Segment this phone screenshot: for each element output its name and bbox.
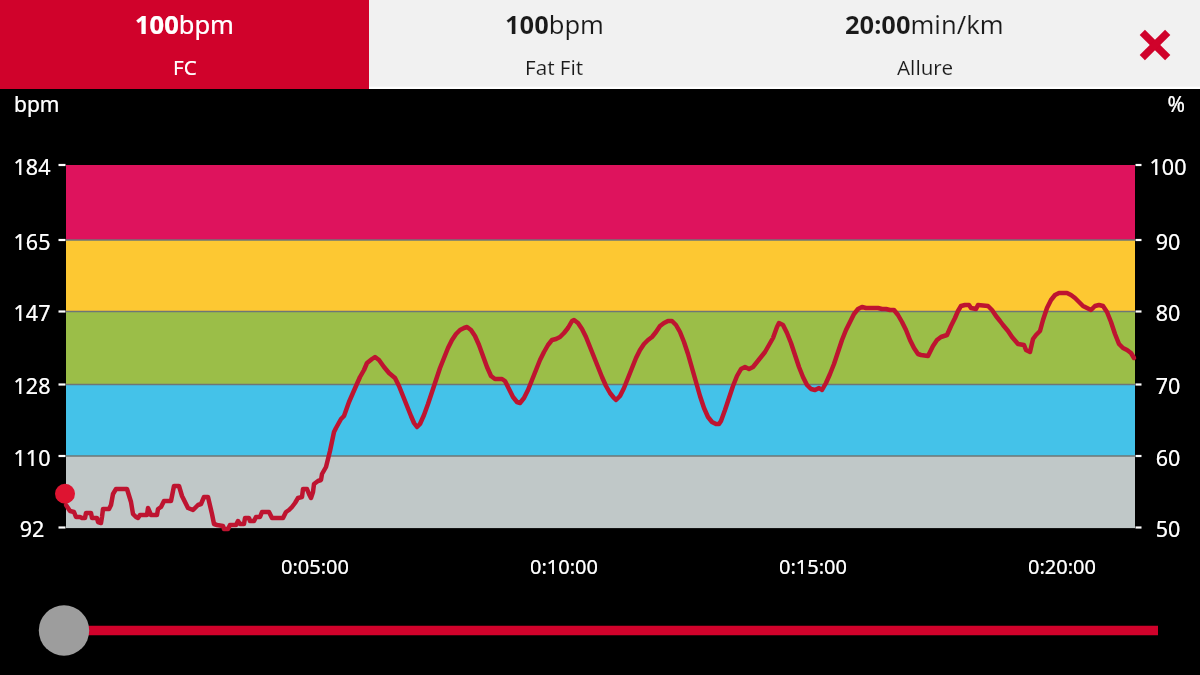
staticText: Fat Fit bbox=[525, 53, 584, 81]
staticText: 165 bbox=[2, 227, 62, 256]
staticText: 184 bbox=[2, 152, 62, 181]
staticText: % bbox=[1120, 90, 1185, 119]
staticText: 92 bbox=[2, 514, 62, 543]
staticText: 0:05:00 bbox=[255, 553, 375, 580]
button[interactable]: 100bpm bbox=[369, 0, 739, 89]
staticText: 50 bbox=[1138, 514, 1198, 543]
staticText: FC bbox=[173, 53, 197, 81]
staticText: 147 bbox=[2, 298, 62, 327]
staticText: 80 bbox=[1138, 298, 1198, 327]
staticText: 0:10:00 bbox=[504, 553, 624, 580]
staticText: 0:15:00 bbox=[753, 553, 873, 580]
staticText: 128 bbox=[2, 371, 62, 400]
staticText: 60 bbox=[1138, 443, 1198, 472]
button[interactable]: 20:00min/km bbox=[739, 0, 1109, 89]
staticText: 100 bbox=[1138, 152, 1198, 181]
staticText: 70 bbox=[1138, 371, 1198, 400]
button[interactable]: Close bbox=[1109, 0, 1200, 89]
button[interactable]: Session timeline slider bbox=[39, 605, 1159, 656]
staticText: Allure bbox=[897, 53, 953, 81]
staticText: 0:20:00 bbox=[1002, 553, 1122, 580]
staticText: 20:00min/km bbox=[845, 7, 1004, 42]
button[interactable]: 100bpm bbox=[0, 0, 369, 89]
staticText: bpm bbox=[14, 90, 60, 119]
staticText: 90 bbox=[1138, 227, 1198, 256]
staticText: 100bpm bbox=[505, 7, 604, 42]
staticText: 100bpm bbox=[135, 7, 234, 42]
staticText: 110 bbox=[2, 443, 62, 472]
